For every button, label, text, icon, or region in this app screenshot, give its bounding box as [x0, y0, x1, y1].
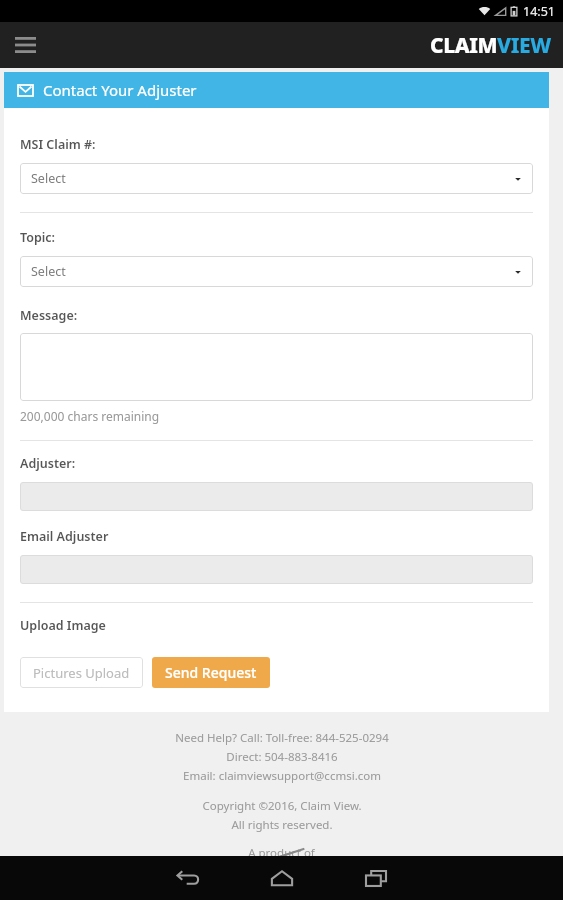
button[interactable]: Home: [249, 856, 315, 900]
button[interactable]: Contact Your Adjuster: [4, 72, 549, 108]
button[interactable]: Pictures Upload: [20, 657, 143, 688]
staticText: Message:: [20, 307, 78, 324]
staticText: Pictures Upload: [33, 664, 130, 682]
button[interactable]: [20, 555, 533, 584]
staticText: Select: [31, 263, 66, 280]
button[interactable]: Back: [155, 856, 221, 900]
button[interactable]: Select: [20, 256, 533, 287]
staticText: 200,000 chars remaining: [20, 408, 160, 424]
button[interactable]: Select: [20, 163, 533, 194]
staticText: All rights reserved.: [231, 817, 333, 833]
staticText: Adjuster:: [20, 455, 76, 472]
button[interactable]: Open navigation menu: [8, 28, 42, 62]
staticText: Upload Image: [20, 617, 106, 634]
staticText: Email Adjuster: [20, 528, 109, 545]
button[interactable]: Recent apps: [343, 856, 409, 900]
staticText: Need Help? Call: Toll-free: 844-525-0294: [175, 730, 389, 746]
button[interactable]: Send Request: [152, 657, 270, 688]
button[interactable]: [20, 333, 533, 401]
staticText: Copyright ©2016, Claim View.: [202, 798, 362, 814]
staticText: Direct: 504-883-8416: [226, 749, 338, 765]
staticText: Topic:: [20, 229, 56, 246]
staticText: A product of: [248, 845, 315, 856]
staticText: Select: [31, 170, 66, 187]
button[interactable]: [20, 482, 533, 511]
staticText: 14:51: [523, 3, 555, 20]
staticText: Email: claimviewsupport@ccmsi.com: [183, 768, 381, 784]
staticText: Contact Your Adjuster: [43, 80, 197, 100]
staticText: Send Request: [165, 663, 257, 682]
staticText: MSI Claim #:: [20, 136, 96, 153]
staticText: CLAIMVIEW: [430, 31, 551, 60]
